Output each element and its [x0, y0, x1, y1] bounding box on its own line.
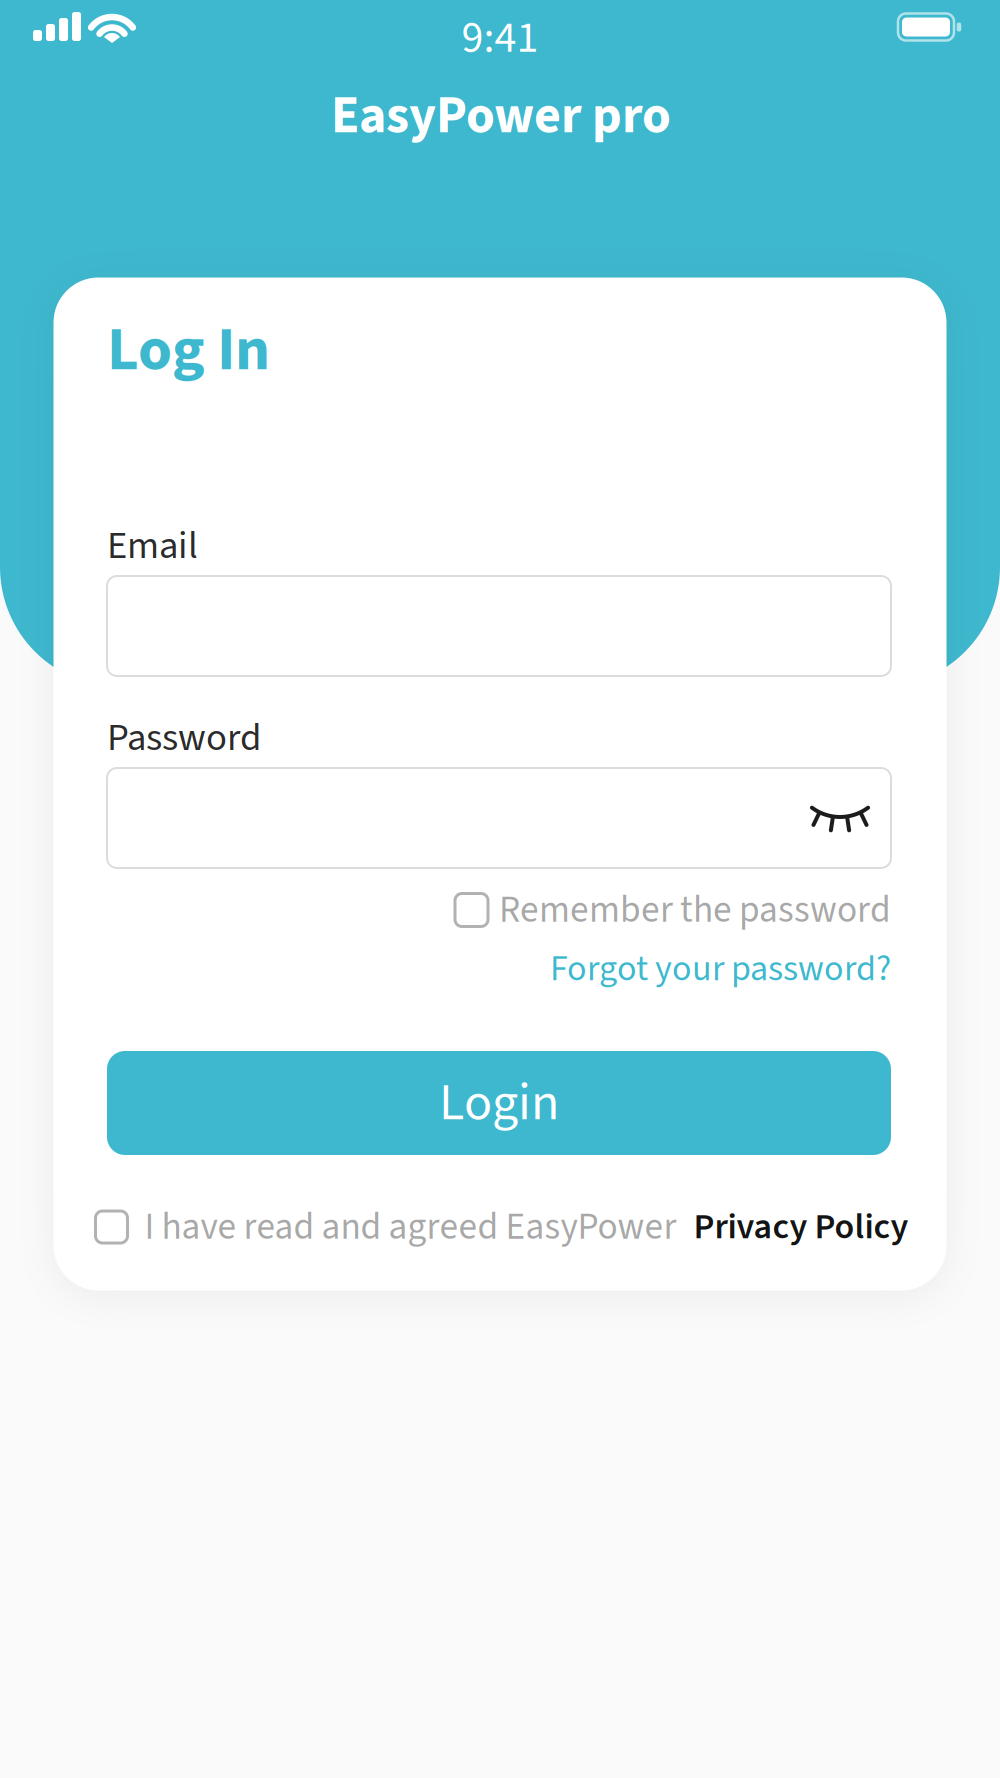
- staticText: Email: [107, 519, 198, 573]
- staticText: Log In: [107, 307, 270, 393]
- staticText: Privacy Policy: [693, 1202, 908, 1252]
- button[interactable]: Privacy Policy: [693, 1202, 908, 1252]
- button[interactable]: Login: [107, 1051, 891, 1155]
- button[interactable]: Password: [107, 768, 891, 868]
- staticText: Login: [439, 1067, 559, 1139]
- staticText: EasyPower pro: [331, 80, 671, 152]
- staticText: Password: [107, 711, 261, 765]
- button[interactable]: Forgot your password?: [550, 944, 891, 994]
- button[interactable]: Email: [107, 576, 891, 676]
- button[interactable]: Show password: [795, 783, 885, 853]
- staticText: Remember the password: [499, 884, 891, 936]
- button[interactable]: I have read and agreed EasyPower: [95, 1201, 676, 1253]
- staticText: I have read and agreed EasyPower: [144, 1201, 676, 1253]
- staticText: Forgot your password?: [550, 944, 891, 994]
- button[interactable]: Remember the password: [455, 884, 891, 936]
- staticText: 9:41: [461, 7, 538, 69]
